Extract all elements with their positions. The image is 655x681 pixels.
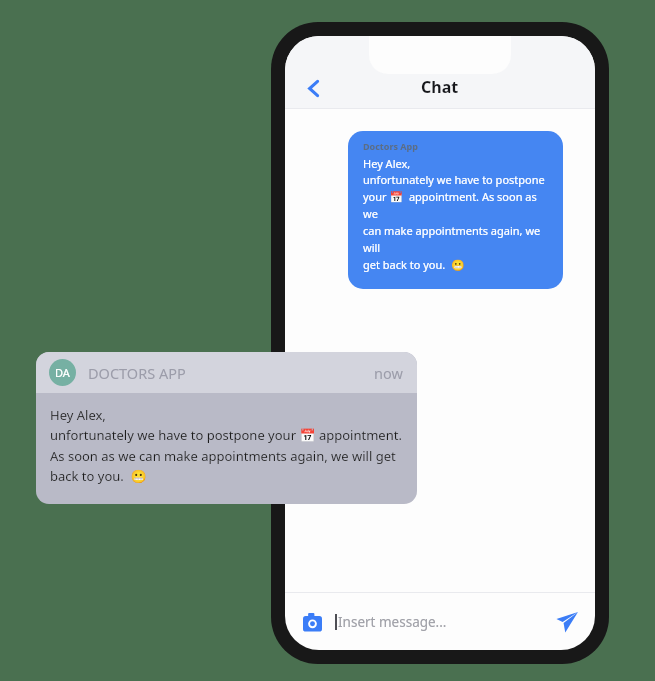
staticText: DA: [55, 365, 70, 380]
button[interactable]: Camera: [298, 608, 326, 636]
staticText: Hey Alex, unfortunately we have to postp…: [50, 406, 402, 485]
button[interactable]: Back: [297, 72, 329, 104]
staticText: Doctors App: [363, 140, 418, 152]
staticText: Insert message...: [338, 613, 552, 631]
staticText: Chat: [421, 76, 459, 98]
staticText: now: [374, 363, 403, 383]
staticText: Hey Alex, unfortunately we have to postp…: [363, 156, 551, 272]
button[interactable]: Doctors App: [348, 131, 563, 289]
button[interactable]: DA: [36, 352, 417, 504]
staticText: DOCTORS APP: [88, 363, 374, 383]
button[interactable]: Send: [552, 607, 582, 637]
